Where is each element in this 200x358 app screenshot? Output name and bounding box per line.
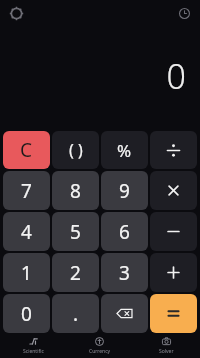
- staticText: 7: [21, 178, 32, 204]
- button[interactable]: C: [3, 131, 50, 169]
- button[interactable]: Equals: [150, 294, 197, 333]
- staticText: 0: [166, 53, 186, 99]
- button[interactable]: %: [101, 131, 148, 169]
- staticText: 4: [21, 219, 32, 245]
- staticText: C: [20, 137, 33, 163]
- button[interactable]: Currency: [66, 334, 133, 358]
- button[interactable]: 3: [101, 253, 148, 292]
- button[interactable]: Minus: [150, 212, 197, 251]
- button[interactable]: History: [174, 3, 194, 23]
- button[interactable]: Multiply: [150, 171, 197, 210]
- button[interactable]: ( ): [52, 131, 99, 169]
- staticText: 1: [21, 260, 32, 286]
- button[interactable]: Solver: [133, 334, 200, 358]
- button[interactable]: Scientific: [0, 334, 66, 358]
- staticText: ( ): [69, 139, 83, 161]
- staticText: Currency: [89, 348, 111, 355]
- staticText: 3: [119, 260, 130, 286]
- button[interactable]: 6: [101, 212, 148, 251]
- button[interactable]: Divide: [150, 131, 197, 169]
- button[interactable]: 2: [52, 253, 99, 292]
- staticText: Scientific: [23, 348, 44, 355]
- button[interactable]: 9: [101, 171, 148, 210]
- staticText: 8: [70, 178, 81, 204]
- button[interactable]: .: [52, 294, 99, 333]
- staticText: 9: [119, 178, 130, 204]
- button[interactable]: 4: [3, 212, 50, 251]
- staticText: 6: [119, 219, 130, 245]
- button[interactable]: Backspace: [101, 294, 148, 333]
- button[interactable]: 8: [52, 171, 99, 210]
- button[interactable]: 0: [3, 294, 50, 333]
- button[interactable]: 1: [3, 253, 50, 292]
- staticText: 0: [21, 301, 32, 327]
- staticText: 2: [70, 260, 81, 286]
- staticText: %: [117, 139, 132, 162]
- staticText: .: [73, 301, 79, 327]
- staticText: 5: [70, 219, 81, 245]
- button[interactable]: 5: [52, 212, 99, 251]
- staticText: Solver: [159, 348, 174, 355]
- button[interactable]: 7: [3, 171, 50, 210]
- button[interactable]: Settings: [6, 3, 26, 23]
- button[interactable]: Plus: [150, 253, 197, 292]
